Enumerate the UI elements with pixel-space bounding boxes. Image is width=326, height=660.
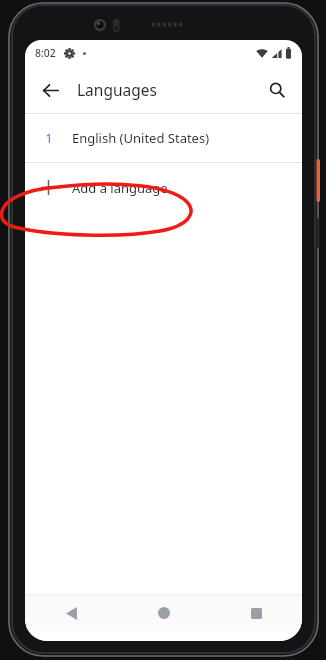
button[interactable]: Add a language [25, 163, 302, 212]
staticText: 1 [45, 129, 53, 147]
button[interactable]: Back [31, 71, 69, 109]
button[interactable]: Back [25, 595, 118, 631]
button[interactable]: 1 [25, 114, 302, 162]
staticText: English (United States) [72, 129, 210, 147]
button[interactable]: Home [118, 595, 210, 631]
staticText: Languages [77, 79, 157, 100]
button[interactable]: Recent apps [210, 595, 302, 631]
staticText: 8:02 [35, 46, 56, 60]
staticText: Add a language [72, 179, 168, 197]
button[interactable]: Search [258, 71, 296, 109]
